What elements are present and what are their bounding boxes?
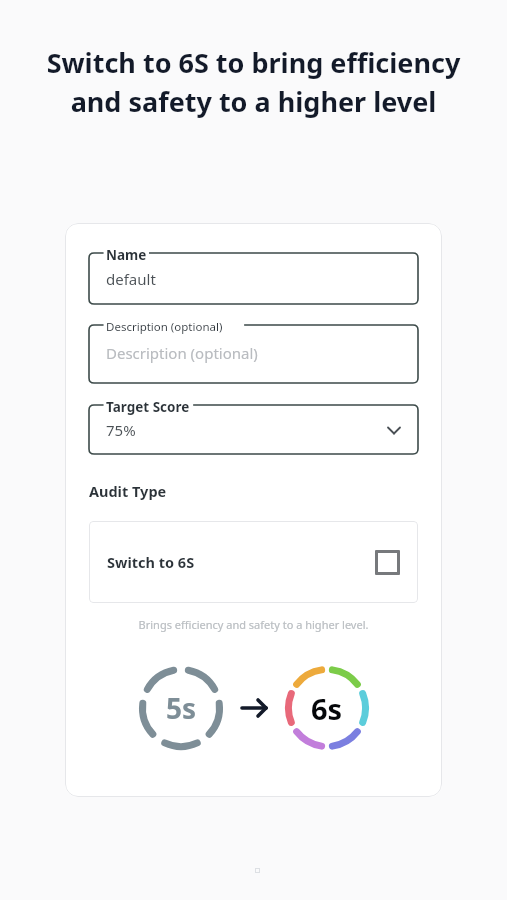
staticText: Name [106,246,147,264]
staticText: Description (optional) [106,343,258,363]
staticText: 75% [106,420,136,440]
staticText: 6s [311,689,343,728]
button[interactable]: Name [89,253,418,304]
staticText: Brings efficiency and safety to a higher… [89,617,418,632]
button[interactable]: Switch to 6S [89,521,418,603]
staticText: Switch to 6S to bring efficiency and saf… [36,44,471,120]
other: Switch to 6S checkbox [375,550,400,575]
staticText: Description (optional) [106,319,223,335]
other: becomes [239,693,269,723]
staticText: Audit Type [89,481,167,501]
other: Open dropdown [386,422,402,438]
staticText: Switch to 6S [107,552,195,572]
staticText: 5s [166,689,197,727]
button[interactable]: Target Score [89,405,418,454]
staticText: default [106,269,156,289]
staticText: Target Score [106,398,190,416]
button[interactable]: Description (optional) [89,325,418,383]
